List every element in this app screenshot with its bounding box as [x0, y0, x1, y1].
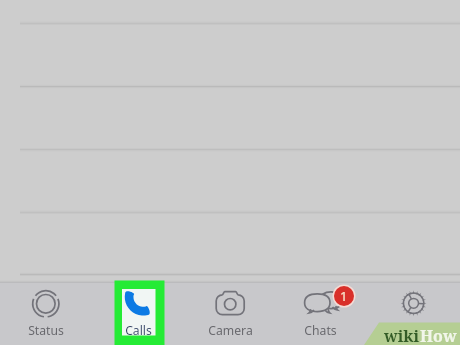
button[interactable]: Calls	[92, 283, 184, 345]
button[interactable]: Camera	[184, 283, 276, 345]
staticText: How	[420, 325, 457, 345]
staticText: Chats	[304, 322, 337, 339]
button[interactable]: Settings	[368, 283, 460, 345]
staticText: wiki	[384, 325, 420, 345]
staticText: Status	[28, 322, 64, 339]
staticText: 1	[340, 287, 348, 305]
staticText: Calls	[125, 322, 152, 339]
staticText: Camera	[208, 322, 253, 339]
button[interactable]: Chats	[276, 283, 368, 345]
staticText: Settings	[391, 322, 438, 339]
button[interactable]: Status	[0, 283, 92, 345]
